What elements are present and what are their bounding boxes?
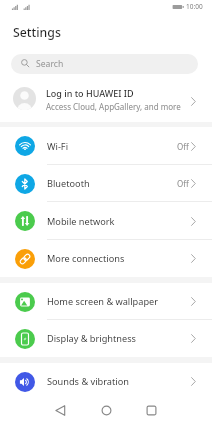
staticText: 10:00 (186, 2, 203, 11)
staticText: Sounds & vibration (47, 375, 191, 388)
button[interactable]: Back (45, 395, 76, 424)
button[interactable]: Home (91, 395, 122, 424)
button[interactable]: Sounds & vibration (0, 363, 212, 400)
staticText: Bluetooth (47, 177, 177, 190)
staticText: More connections (47, 252, 191, 265)
staticText: Log in to HUAWEI ID (46, 87, 134, 99)
button[interactable]: More connections (0, 240, 212, 277)
staticText: Off (177, 141, 189, 152)
button[interactable]: Mobile network (0, 202, 212, 240)
button[interactable]: Log in to HUAWEI ID (0, 74, 212, 122)
button[interactable]: Bluetooth (0, 165, 212, 202)
button[interactable]: Wi-Fi (0, 127, 212, 165)
button[interactable]: Home screen & wallpaper (0, 283, 212, 320)
staticText: Access Cloud, AppGallery, and more (46, 101, 181, 112)
staticText: Display & brightness (47, 332, 191, 345)
button[interactable]: Display & brightness (0, 320, 212, 357)
button[interactable]: Recent apps (136, 395, 167, 424)
staticText: Search (36, 58, 64, 70)
staticText: Wi-Fi (47, 140, 177, 153)
staticText: Mobile network (47, 215, 191, 228)
staticText: Home screen & wallpaper (47, 295, 191, 308)
staticText: Off (177, 178, 189, 189)
button[interactable]: Search (11, 54, 198, 74)
staticText: Settings (13, 24, 61, 41)
